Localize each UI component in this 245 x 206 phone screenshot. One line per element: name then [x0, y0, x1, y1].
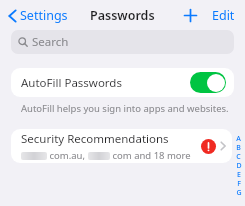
button[interactable]: Security Recommendations	[11, 129, 232, 163]
staticText: Settings	[20, 7, 68, 24]
staticText: com.au,	[47, 149, 88, 162]
staticText: C	[236, 152, 241, 161]
button[interactable]: AutoFill Passwords	[11, 68, 234, 97]
staticText: D	[236, 161, 242, 170]
staticText: E	[237, 170, 241, 179]
button[interactable]: Edit	[210, 4, 237, 27]
staticText: B	[236, 143, 241, 152]
staticText: Security Recommendations	[21, 131, 169, 147]
button[interactable]: Settings	[6, 3, 70, 28]
button[interactable]: Search	[11, 30, 234, 54]
staticText: com and 18 more	[110, 149, 191, 162]
staticText: Passwords	[90, 7, 155, 24]
staticText: AutoFill helps you sign into apps and we…	[21, 102, 229, 115]
staticText: G	[236, 188, 242, 197]
button[interactable]: Add password	[181, 6, 200, 25]
staticText: Edit	[212, 7, 235, 24]
button[interactable]: AutoFill Passwords toggle, on	[190, 72, 226, 93]
button[interactable]: Section index	[232, 134, 245, 197]
staticText: AutoFill Passwords	[21, 75, 122, 91]
staticText: Search	[32, 34, 69, 50]
staticText: A	[236, 134, 241, 143]
staticText: F	[237, 179, 241, 188]
